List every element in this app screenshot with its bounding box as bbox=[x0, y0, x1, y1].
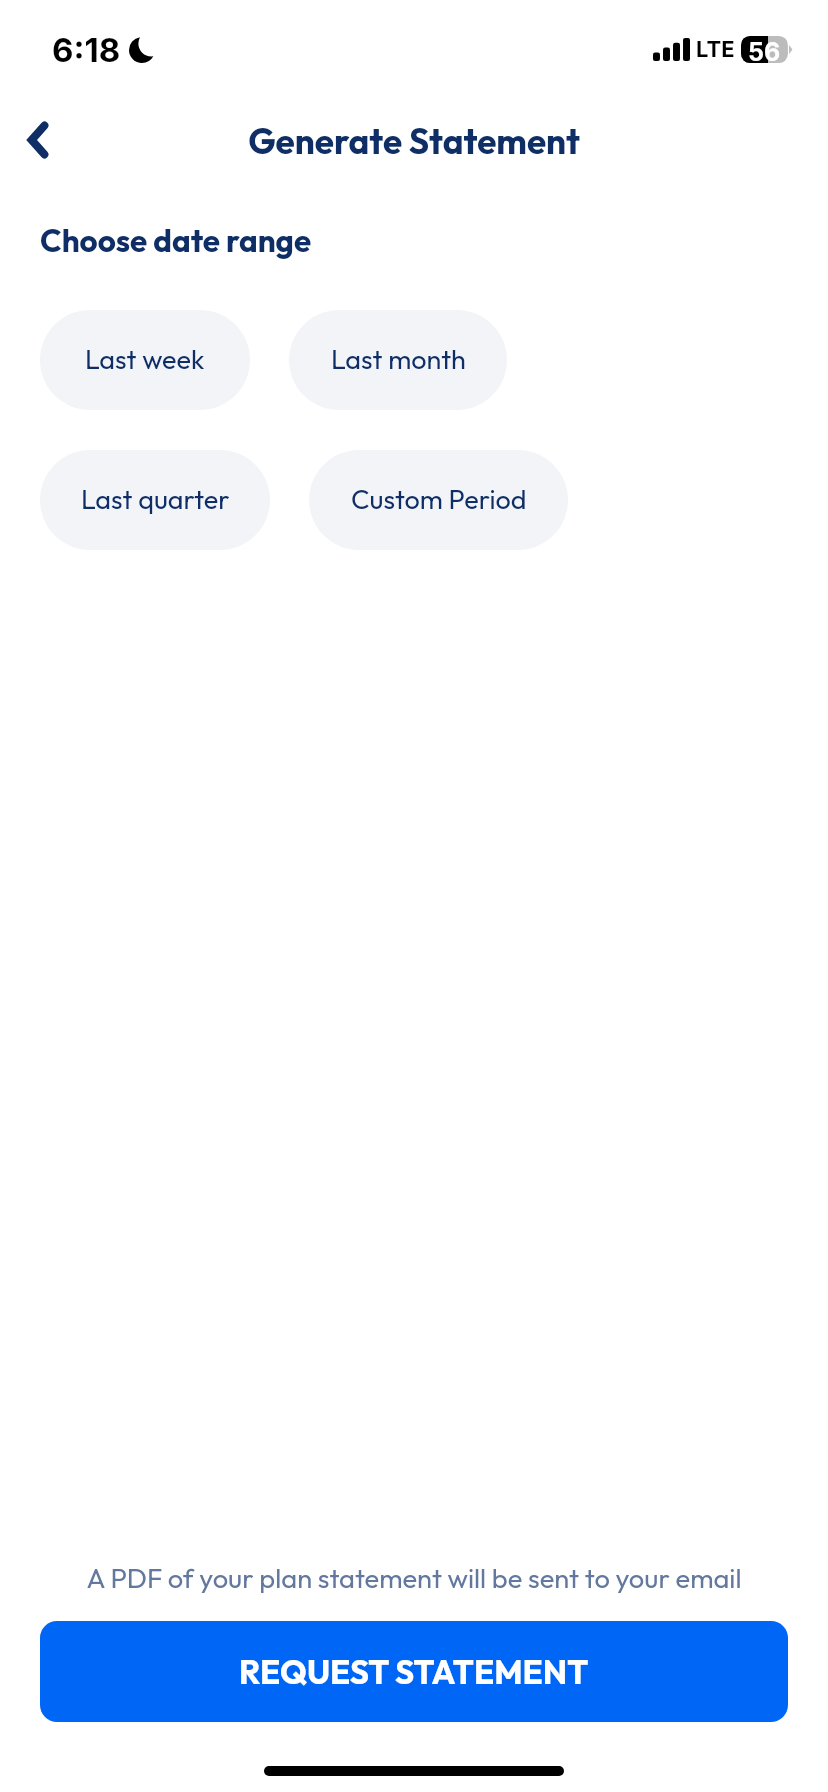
button[interactable]: Custom Period bbox=[309, 450, 568, 550]
staticText: Choose date range bbox=[40, 221, 312, 261]
button[interactable]: Last quarter bbox=[40, 450, 270, 550]
button[interactable]: Last week bbox=[40, 310, 250, 410]
staticText: Custom Period bbox=[351, 482, 527, 516]
button[interactable]: Back bbox=[2, 104, 74, 176]
button[interactable]: Last month bbox=[289, 310, 507, 410]
button[interactable]: REQUEST STATEMENT bbox=[40, 1621, 788, 1722]
staticText: Last week bbox=[85, 342, 205, 376]
staticText: 6:18 bbox=[52, 30, 121, 70]
staticText: Last quarter bbox=[81, 482, 230, 516]
staticText: Generate Statement bbox=[0, 119, 828, 163]
staticText: REQUEST STATEMENT bbox=[239, 1651, 589, 1693]
staticText: 56 bbox=[748, 37, 781, 64]
staticText: Last month bbox=[331, 342, 466, 376]
staticText: LTE bbox=[696, 36, 735, 63]
staticText: A PDF of your plan statement will be sen… bbox=[0, 1561, 828, 1595]
